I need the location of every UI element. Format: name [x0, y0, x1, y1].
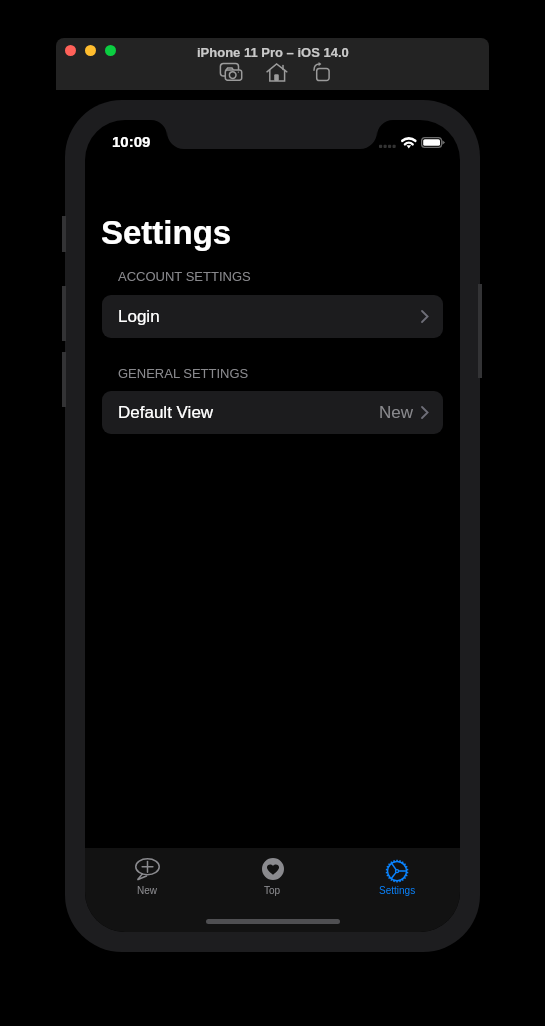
button[interactable]: Zoom window — [105, 45, 116, 56]
staticText: 10:09 — [112, 133, 151, 150]
staticText: New — [137, 885, 158, 896]
staticText: iPhone 11 Pro – iOS 14.0 — [197, 45, 349, 60]
button[interactable]: Rotate device — [309, 60, 335, 86]
staticText: Top — [264, 885, 281, 896]
staticText: Settings — [101, 214, 232, 251]
button[interactable]: Take screenshot — [218, 60, 244, 86]
button[interactable]: Default View — [102, 391, 443, 434]
staticText: GENERAL SETTINGS — [118, 366, 249, 381]
staticText: Settings — [379, 885, 416, 896]
button[interactable]: Login — [102, 295, 443, 338]
button[interactable]: Top — [210, 848, 335, 896]
button[interactable]: Settings — [335, 848, 460, 896]
staticText: Default View — [118, 403, 214, 422]
button[interactable]: Close window — [65, 45, 76, 56]
button[interactable]: New — [85, 848, 210, 896]
staticText: ACCOUNT SETTINGS — [118, 269, 251, 284]
staticText: New — [379, 403, 414, 422]
button[interactable]: Minimize window — [85, 45, 96, 56]
staticText: Login — [118, 307, 160, 326]
button[interactable]: Home — [264, 60, 290, 86]
